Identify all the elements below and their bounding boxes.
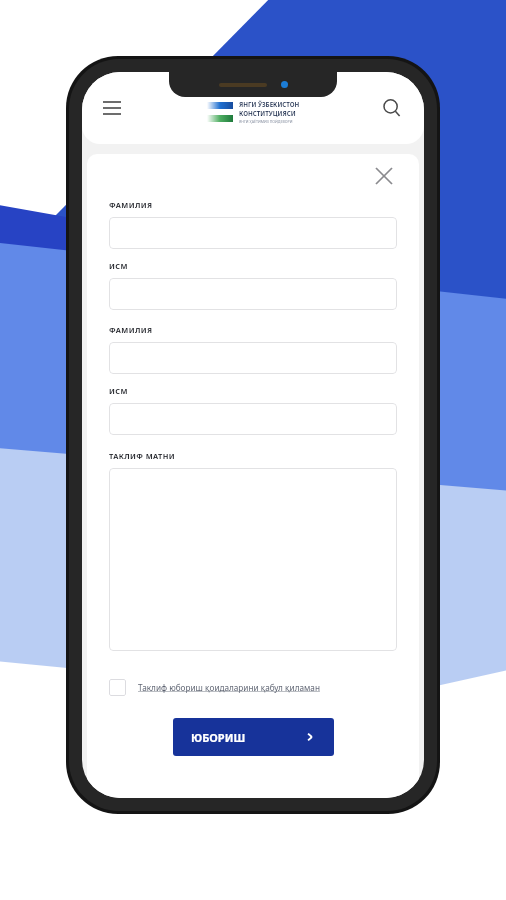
staticText: ИСМ	[109, 261, 128, 271]
staticText: ФАМИЛИЯ	[109, 325, 153, 335]
button[interactable]: Menu	[96, 92, 128, 124]
staticText: ФАМИЛИЯ	[109, 200, 153, 210]
button[interactable]	[109, 217, 397, 249]
button[interactable]	[109, 468, 397, 651]
button[interactable]: ЮБОРИШ	[173, 718, 334, 756]
button[interactable]: Search	[376, 92, 408, 124]
staticText: Таклиф юбориш қоидаларини қабул қиламан	[138, 682, 320, 693]
staticText: ЯНГИ ЎЗБЕКИСТОН	[239, 100, 300, 108]
button[interactable]: Close	[369, 161, 399, 191]
button[interactable]	[109, 278, 397, 310]
staticText: КОНСТИТУЦИЯСИ	[239, 109, 296, 117]
button[interactable]: Таклиф юбориш қоидаларини қабул қиламан	[109, 679, 397, 696]
staticText: ИСМ	[109, 386, 128, 396]
staticText: ЮБОРИШ	[191, 730, 246, 745]
button[interactable]	[109, 403, 397, 435]
staticText: ЯНГИ ҲАЁТИМИЗ ПОЙДЕВОРИ	[239, 119, 293, 124]
staticText: ТАКЛИФ МАТНИ	[109, 451, 176, 461]
button[interactable]	[109, 342, 397, 374]
